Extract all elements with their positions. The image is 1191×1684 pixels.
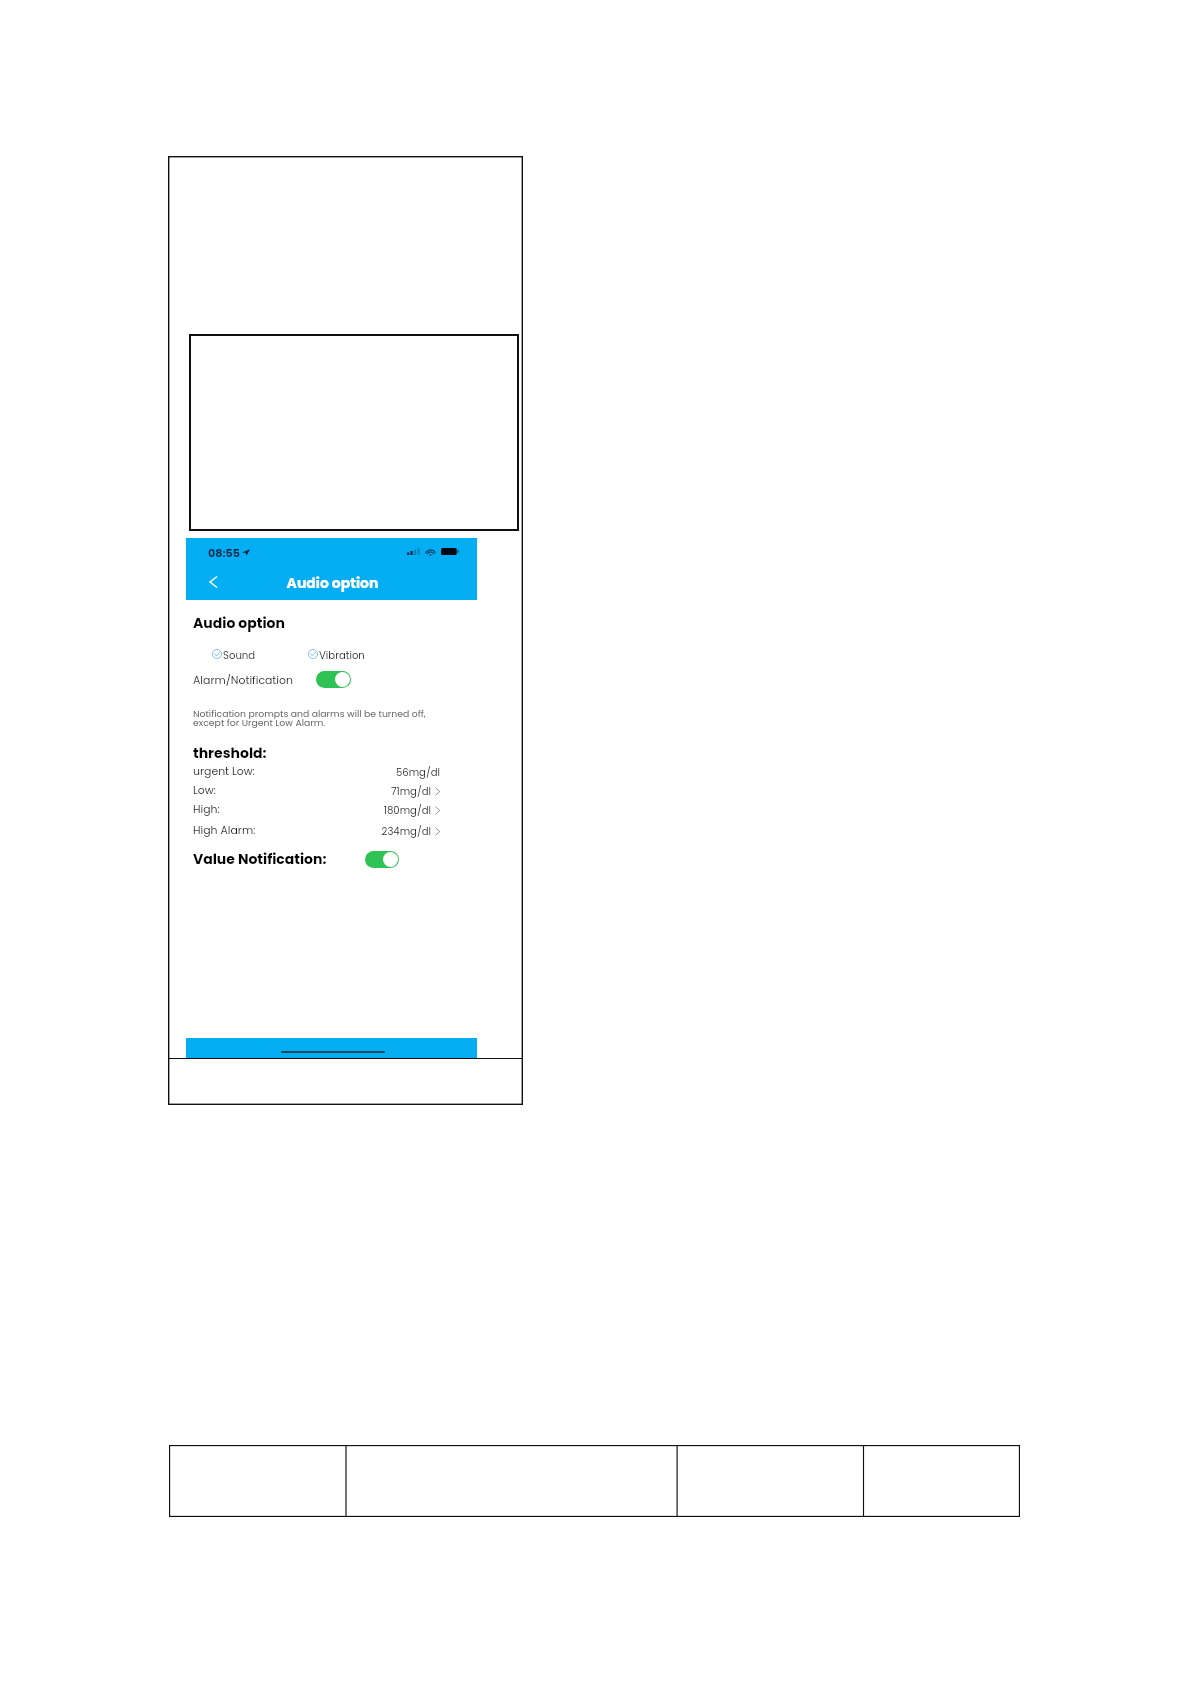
staticText: threshold:	[193, 743, 267, 763]
staticText: 234mg/dl	[186, 824, 431, 838]
staticText: High:	[193, 802, 220, 817]
button[interactable]: Alarm/Notification, on	[316, 671, 351, 688]
staticText: High Alarm:	[193, 823, 256, 838]
staticText: urgent Low:	[193, 764, 255, 779]
staticText: Notification prompts and alarms will be …	[193, 707, 426, 730]
staticText: Audio option	[187, 573, 477, 593]
staticText: Audio option	[193, 613, 285, 633]
button[interactable]: urgent Low:	[186, 762, 477, 781]
staticText: 180mg/dl	[186, 803, 431, 817]
button[interactable]: Back	[200, 569, 226, 595]
staticText: 08:55	[208, 545, 240, 561]
button[interactable]: Value Notification, on	[365, 851, 399, 868]
staticText: Value Notification:	[193, 849, 327, 869]
staticText: Vibration	[319, 648, 365, 659]
button[interactable]: Low:	[186, 781, 477, 800]
button[interactable]: High:	[186, 800, 477, 819]
staticText: Low:	[193, 783, 216, 798]
staticText: Alarm/Notification	[193, 673, 293, 688]
button[interactable]: Vibration	[308, 648, 365, 659]
staticText: Sound	[223, 648, 256, 659]
staticText: 56mg/dl	[186, 765, 440, 779]
button[interactable]: Sound	[212, 648, 256, 659]
staticText: 71mg/dl	[186, 784, 431, 798]
button[interactable]: High Alarm:	[186, 821, 477, 840]
